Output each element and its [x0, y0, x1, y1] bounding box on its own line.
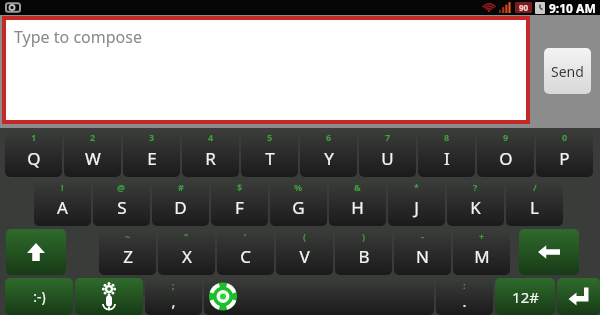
button[interactable]: 5 [241, 130, 298, 177]
button[interactable]: & [329, 180, 386, 226]
staticText: ~ [125, 230, 131, 242]
button[interactable]: 2 [64, 130, 121, 177]
staticText: @ [117, 181, 126, 193]
button[interactable]: ( [276, 229, 333, 275]
staticText: 9:10 AM [549, 0, 596, 15]
button[interactable]: Space [204, 278, 434, 315]
staticText: ? [473, 181, 478, 193]
staticText: :-) [33, 287, 46, 306]
staticText: ' [244, 230, 247, 242]
staticText: 4 [208, 131, 214, 143]
staticText: : [463, 279, 466, 291]
staticText: ) [362, 230, 366, 242]
button[interactable]: Enter [557, 278, 600, 315]
button[interactable]: $ [211, 180, 268, 226]
button[interactable]: 3 [123, 130, 180, 177]
staticText: & [354, 181, 361, 193]
staticText: B [358, 245, 370, 268]
staticText: 1 [31, 131, 37, 143]
staticText: + [479, 230, 485, 242]
staticText: ! [61, 181, 64, 193]
staticText: 7 [385, 131, 391, 143]
staticText: 12# [512, 287, 539, 307]
staticText: N [416, 245, 429, 268]
staticText: J [414, 196, 419, 219]
staticText: X [182, 245, 192, 268]
button[interactable]: + [453, 229, 510, 275]
button[interactable]: 1 [5, 130, 62, 177]
button[interactable]: ~ [99, 229, 156, 275]
staticText: T [265, 147, 275, 170]
button[interactable]: * [388, 180, 445, 226]
button[interactable]: @ [93, 180, 150, 226]
button[interactable]: 7 [359, 130, 416, 177]
button[interactable]: - [394, 229, 451, 275]
button[interactable]: 4 [182, 130, 239, 177]
staticText: L [530, 196, 539, 219]
button[interactable]: : [436, 278, 493, 315]
button[interactable]: ! [34, 180, 91, 226]
staticText: 3 [149, 131, 155, 143]
staticText: O [499, 147, 513, 170]
button[interactable]: ? [447, 180, 504, 226]
button[interactable]: 6 [300, 130, 357, 177]
staticText: C [240, 245, 251, 268]
staticText: I [444, 147, 450, 170]
staticText: $ [237, 181, 243, 193]
staticText: G [292, 196, 305, 219]
staticText: K [470, 196, 481, 219]
staticText: " [184, 230, 189, 242]
staticText: W [85, 147, 101, 170]
staticText: M [474, 245, 490, 268]
staticText: Q [27, 147, 41, 170]
staticText: % [294, 181, 303, 193]
button[interactable]: :-) [5, 278, 73, 315]
button[interactable]: ) [335, 229, 392, 275]
staticText: ; [172, 279, 175, 291]
staticText: R [205, 147, 216, 170]
staticText: A [57, 196, 68, 219]
staticText: S [117, 196, 127, 219]
button[interactable]: Shift [6, 229, 66, 275]
staticText: U [381, 147, 394, 170]
staticText: Type to compose [14, 26, 142, 48]
staticText: * [414, 181, 419, 193]
button[interactable]: ' [217, 229, 274, 275]
staticText: 5 [267, 131, 273, 143]
staticText: , [171, 291, 176, 311]
staticText: - [421, 230, 424, 242]
staticText: H [351, 196, 364, 219]
button[interactable]: / [506, 180, 563, 226]
staticText: 8 [444, 131, 450, 143]
staticText: V [299, 245, 310, 268]
button[interactable]: Backspace [519, 229, 579, 275]
button[interactable]: # [152, 180, 209, 226]
staticText: Y [324, 147, 334, 170]
staticText: 0 [562, 131, 568, 143]
staticText: . [462, 291, 467, 311]
staticText: 6 [326, 131, 332, 143]
button[interactable]: 9 [477, 130, 534, 177]
staticText: F [235, 196, 244, 219]
button[interactable]: Voice input and settings [75, 278, 143, 315]
staticText: Send [551, 62, 584, 81]
staticText: E [147, 147, 157, 170]
staticText: # [178, 181, 184, 193]
staticText: 9 [503, 131, 509, 143]
button[interactable]: 12# [495, 278, 555, 315]
button[interactable]: Type to compose [6, 20, 526, 120]
button[interactable]: ; [145, 278, 202, 315]
button[interactable]: " [158, 229, 215, 275]
button[interactable]: 0 [536, 130, 593, 177]
staticText: ( [303, 230, 307, 242]
staticText: Z [123, 245, 133, 268]
button[interactable]: % [270, 180, 327, 226]
button[interactable]: 8 [418, 130, 475, 177]
staticText: P [559, 147, 570, 170]
staticText: 90 [519, 2, 529, 13]
staticText: / [533, 181, 537, 193]
staticText: D [174, 196, 187, 219]
button[interactable]: Send [544, 48, 591, 94]
staticText: 2 [90, 131, 96, 143]
